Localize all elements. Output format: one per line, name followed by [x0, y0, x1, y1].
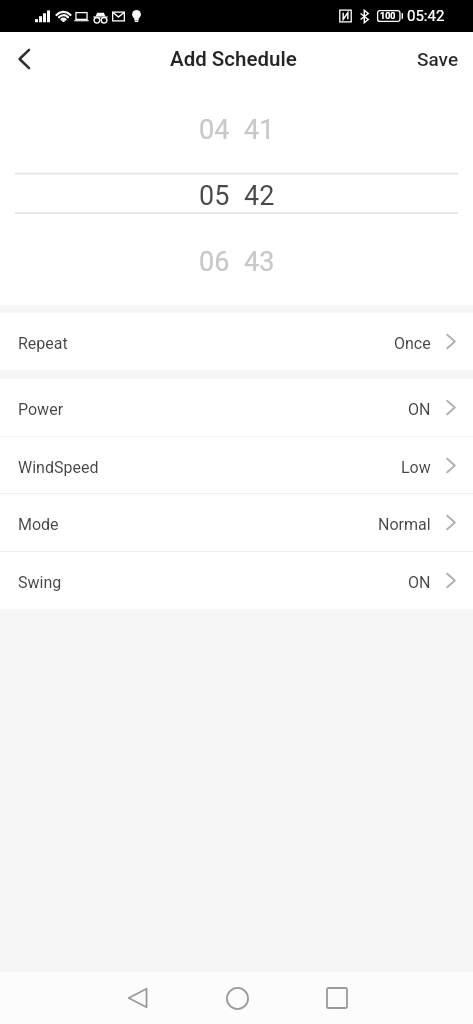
button[interactable]: Save	[397, 32, 473, 86]
button[interactable]: Back	[94, 972, 180, 1024]
staticText: Save	[417, 48, 459, 70]
button[interactable]: Mode	[0, 494, 473, 551]
staticText: Add Schedule	[170, 47, 297, 71]
staticText: 100	[380, 11, 396, 22]
button[interactable]: Home	[194, 972, 280, 1024]
staticText: 04	[199, 114, 230, 146]
staticText: 06	[199, 246, 230, 278]
staticText: Swing	[18, 573, 62, 592]
staticText: 42	[244, 180, 275, 212]
staticText: Repeat	[18, 334, 68, 353]
staticText: ON	[408, 573, 431, 592]
staticText: Power	[18, 400, 64, 419]
staticText: 43	[244, 246, 275, 278]
staticText: WindSpeed	[18, 458, 99, 477]
staticText: Normal	[378, 515, 431, 534]
staticText: ON	[408, 400, 431, 419]
button[interactable]: WindSpeed	[0, 437, 473, 493]
staticText: Once	[394, 334, 431, 353]
button[interactable]: Recents	[294, 972, 380, 1024]
button[interactable]: Power	[0, 379, 473, 436]
button[interactable]: Back	[0, 35, 48, 83]
staticText: Low	[401, 458, 431, 477]
staticText: 05	[199, 180, 230, 212]
button[interactable]: Repeat	[0, 313, 473, 370]
staticText: 05:42	[407, 7, 445, 25]
button[interactable]: Swing	[0, 552, 473, 609]
staticText: 41	[244, 114, 275, 146]
staticText: Mode	[18, 515, 59, 534]
